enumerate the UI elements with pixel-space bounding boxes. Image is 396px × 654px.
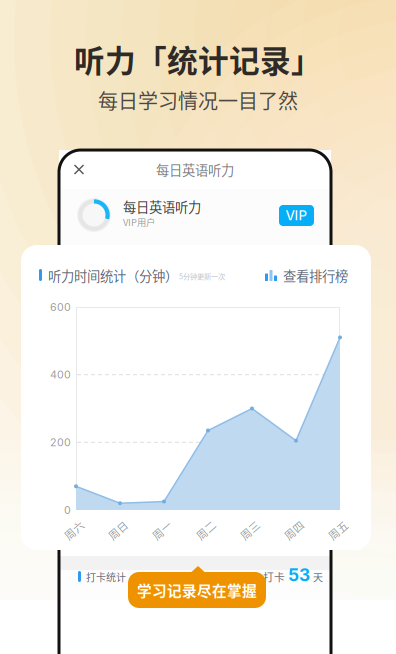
staticText: 周一 [151,522,173,538]
staticText: VIP用户 [123,215,155,229]
staticText: 听力时间统计（分钟） [48,266,178,285]
staticText: 周五 [327,522,349,538]
staticText: 查看排行榜 [283,266,348,285]
staticText: 每日学习情况一目了然 [98,85,298,114]
staticText: 600 [50,300,71,313]
staticText: VIP [285,207,307,223]
staticText: 学习记录尽在掌握 [137,579,257,601]
staticText: 200 [50,436,71,449]
staticText: 听力「统计记录」 [74,37,322,81]
staticText: 周三 [239,522,261,538]
button[interactable]: VIP [279,205,314,226]
staticText: 周六 [63,522,85,538]
staticText: 周四 [283,522,305,538]
staticText: 天 [313,570,323,584]
staticText: 0 [64,503,71,516]
staticText: 周日 [107,522,129,538]
button[interactable]: Close [66,159,92,181]
button[interactable]: 查看排行榜 [261,265,355,285]
staticText: 周二 [195,522,217,538]
staticText: 5分钟更新一次 [179,271,225,281]
staticText: 每日英语听力 [156,160,234,179]
button[interactable]: 学习记录尽在掌握 [128,566,266,608]
staticText: 53 [288,564,310,585]
staticText: 400 [50,368,71,381]
staticText: 打卡 [263,569,285,584]
staticText: 打卡统计 [86,570,126,584]
staticText: 每日英语听力 [123,197,201,216]
